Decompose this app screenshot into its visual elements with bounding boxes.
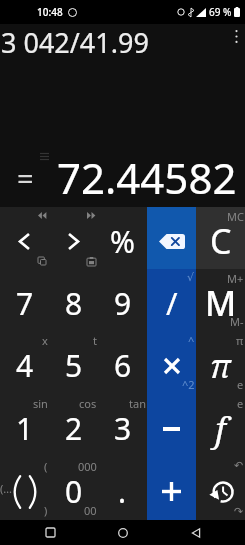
staticText: 3 (114, 408, 132, 449)
staticText: 00 (84, 503, 97, 518)
staticText: 69 % (209, 5, 232, 19)
button[interactable]: Move cursor right (49, 207, 98, 269)
button[interactable]: ↶ (196, 457, 245, 520)
button[interactable]: Move cursor left (0, 207, 49, 269)
staticText: 9 (114, 283, 132, 324)
button[interactable]: 8 (49, 269, 98, 331)
staticText: e (237, 396, 244, 411)
button[interactable]: 6 (98, 331, 147, 394)
button[interactable]: MC (196, 207, 245, 269)
staticText: 10:48 (37, 5, 63, 19)
button[interactable]: 7 (0, 269, 49, 331)
button[interactable]: More options (229, 26, 243, 46)
staticText: / (166, 282, 178, 324)
staticText: x (42, 333, 48, 348)
staticText: sin (33, 396, 48, 411)
button[interactable]: cos (49, 394, 98, 457)
staticText: M (205, 280, 237, 326)
button[interactable]: . (98, 457, 147, 520)
button[interactable]: π (196, 331, 245, 394)
button[interactable]: ^ (147, 331, 196, 394)
staticText: = (17, 158, 34, 197)
staticText: π (210, 344, 231, 388)
other: Backspace (159, 234, 185, 249)
staticText: M+ (227, 271, 244, 286)
staticText: π (236, 333, 244, 348)
staticText: 3 042/41.99 (1, 24, 149, 61)
button[interactable]: 000 (49, 457, 98, 520)
button[interactable]: ( (0, 457, 49, 520)
staticText: % (110, 221, 135, 262)
staticText: 0 (65, 471, 83, 512)
staticText: cos (79, 396, 97, 411)
button[interactable]: 9 (98, 269, 147, 331)
other: Parentheses (13, 475, 37, 509)
button[interactable]: Minus (147, 394, 196, 457)
staticText: 8 (65, 283, 83, 324)
staticText: 5 (65, 345, 83, 386)
button[interactable]: Back (173, 520, 218, 545)
other: Plus (162, 482, 181, 501)
other: History (208, 479, 234, 505)
button[interactable]: Backspace (147, 207, 196, 269)
staticText: 000 (78, 459, 97, 474)
staticText: √ (187, 271, 195, 284)
staticText: ) (44, 503, 48, 518)
staticText: ( (44, 459, 48, 474)
staticText: ^ (188, 333, 195, 348)
button[interactable]: Plus (147, 457, 196, 520)
staticText: 6 (114, 345, 132, 386)
button[interactable]: Recent apps (28, 520, 73, 545)
staticText: 1 (16, 408, 34, 449)
staticText: C (210, 218, 232, 264)
other: Move cursor right (68, 233, 79, 250)
button[interactable]: tan (98, 394, 147, 457)
button[interactable]: √ (147, 269, 196, 331)
staticText: e (237, 377, 244, 392)
button[interactable]: Home (100, 520, 145, 545)
button[interactable]: M+ (196, 269, 245, 331)
staticText: MC (227, 209, 244, 224)
other: Move cursor left (19, 233, 30, 250)
staticText: ↷ (234, 505, 244, 518)
staticText: M- (230, 314, 244, 329)
staticText: t (93, 333, 97, 348)
button[interactable]: e (196, 394, 245, 457)
staticText: . (118, 471, 127, 512)
other: Multiply (164, 358, 180, 374)
staticText: ^2 (182, 377, 195, 392)
staticText: f (215, 406, 226, 452)
staticText: 72.44582 (57, 149, 237, 206)
button[interactable]: sin (0, 394, 49, 457)
button[interactable]: x (0, 331, 49, 394)
staticText: (… (0, 481, 13, 496)
staticText: tan (129, 396, 146, 411)
staticText: 2 (65, 408, 83, 449)
button[interactable]: t (49, 331, 98, 394)
staticText: 7 (16, 283, 34, 324)
staticText: 4 (16, 345, 34, 386)
staticText: ↶ (234, 459, 244, 472)
button[interactable]: % (98, 207, 147, 269)
